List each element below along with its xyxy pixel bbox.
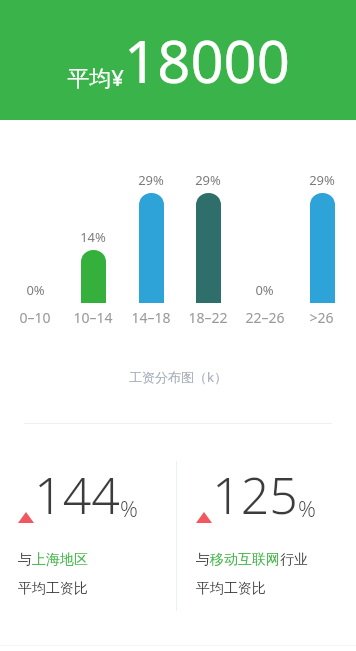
staticText: 14–18 [131,308,171,327]
staticText: 0% [26,281,45,299]
staticText: >26 [309,308,334,327]
staticText: 工资分布图（k） [129,368,227,386]
staticText: 22–26 [245,308,285,327]
staticText: 平均工资比 [18,580,88,598]
staticText: 125 [212,461,298,529]
staticText: 18000 [124,21,290,100]
staticText: 10–14 [73,308,113,327]
staticText: 0% [255,281,274,299]
staticText: 平均工资比 [196,580,266,598]
staticText: % [120,493,138,523]
staticText: 144 [34,461,120,529]
other: Increase [196,512,212,523]
staticText: 29% [195,171,221,189]
staticText: 29% [309,171,335,189]
staticText: 与移动互联网行业 [196,551,308,569]
staticText: 与上海地区 [18,551,88,569]
staticText: 0–10 [19,308,51,327]
staticText: 18–22 [188,308,228,327]
staticText: 平均¥ [67,62,124,92]
staticText: % [298,493,316,523]
button[interactable]: Increase [0,455,178,598]
button[interactable]: Increase [178,455,356,598]
staticText: 14% [80,228,106,246]
other: Increase [18,512,34,523]
staticText: 29% [138,171,164,189]
